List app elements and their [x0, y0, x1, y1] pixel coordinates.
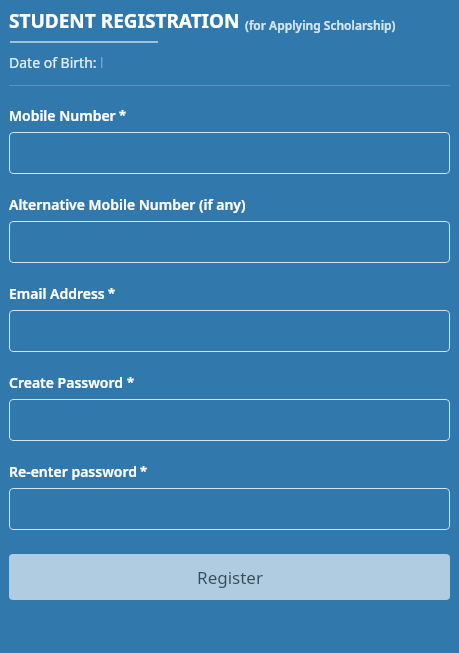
button[interactable]: Re-enter password [9, 488, 450, 530]
button[interactable]: Create Password [9, 399, 450, 441]
staticText: Alternative Mobile Number (if any) [9, 195, 246, 214]
button[interactable]: Register [9, 554, 450, 600]
staticText: * [140, 462, 148, 480]
staticText: Register [197, 566, 263, 589]
staticText: Email Address [9, 284, 105, 303]
staticText: * [119, 106, 127, 124]
staticText: Create Password [9, 373, 124, 392]
staticText: * [108, 284, 116, 302]
button[interactable]: Email Address [9, 310, 450, 352]
button[interactable]: Mobile Number [9, 132, 450, 174]
button[interactable]: Alternative Mobile Number (if any) [9, 221, 450, 263]
staticText: * [127, 373, 135, 391]
staticText: Mobile Number [9, 106, 116, 125]
staticText: Date of Birth: [9, 53, 97, 72]
staticText: (for Applying Scholarship) [245, 17, 396, 33]
staticText: Re-enter password [9, 462, 137, 481]
staticText: STUDENT REGISTRATION [9, 8, 240, 34]
